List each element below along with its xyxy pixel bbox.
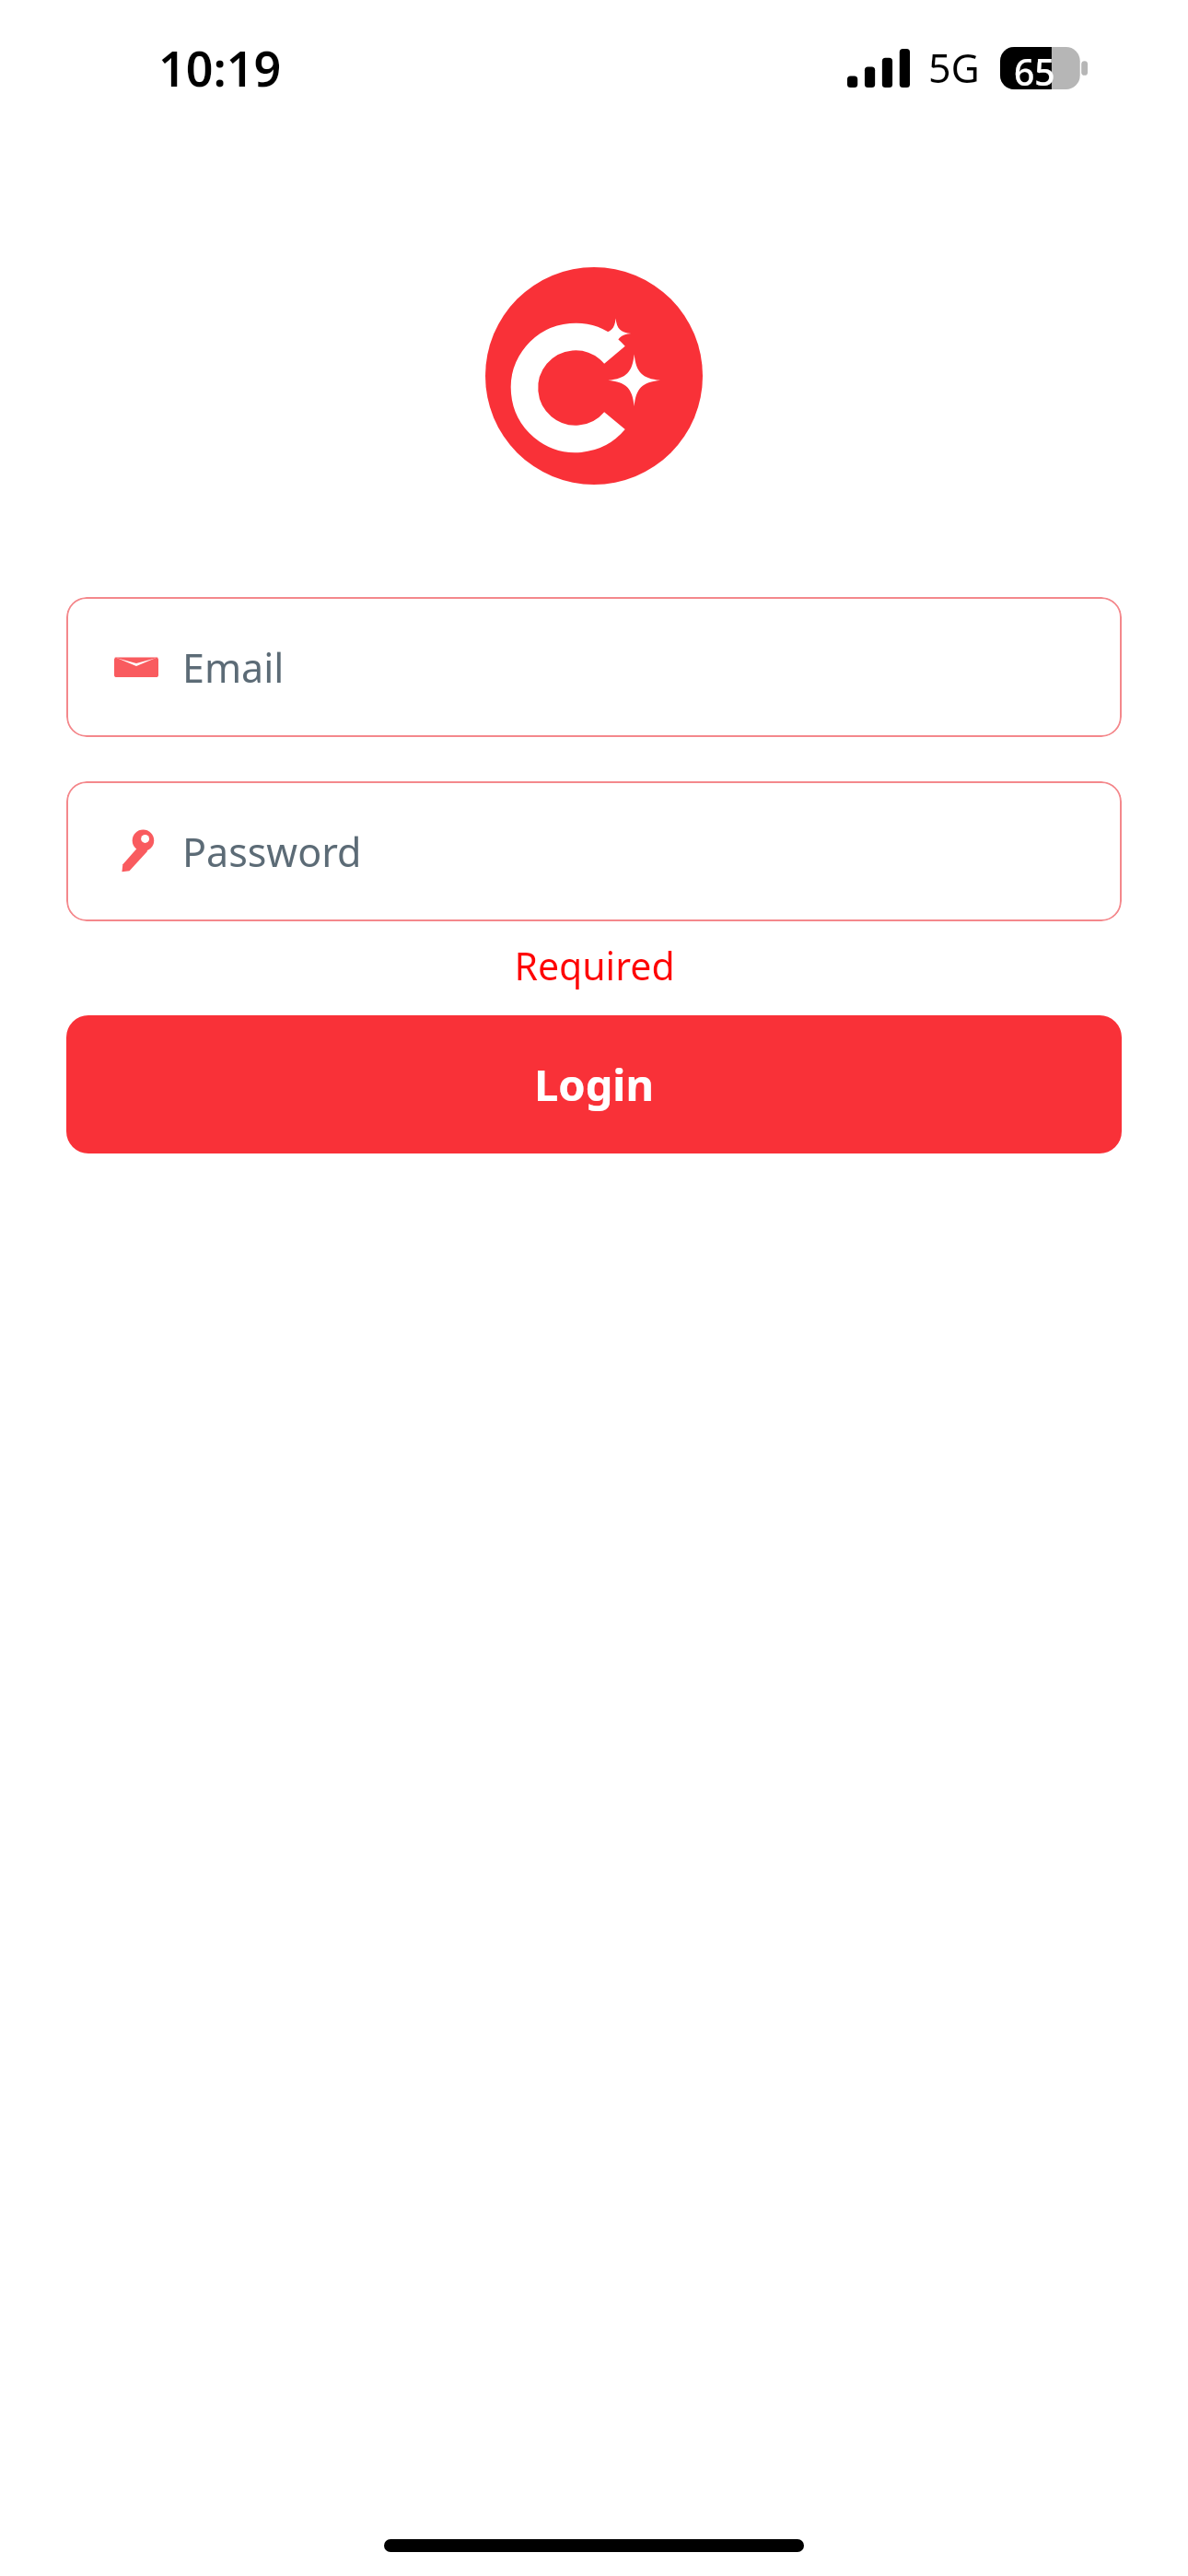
other: Email <box>114 645 158 689</box>
other: Password <box>114 829 158 873</box>
staticText: 10:19 <box>158 35 282 100</box>
staticText: Required <box>514 940 675 991</box>
button[interactable]: Login <box>66 1015 1122 1153</box>
staticText: Login <box>534 1055 654 1114</box>
button[interactable]: Email <box>66 597 1122 737</box>
button[interactable]: Password <box>66 781 1122 921</box>
staticText: Email <box>182 640 285 695</box>
staticText: 65 <box>1014 47 1055 89</box>
staticText: 5G <box>928 41 980 95</box>
staticText: Password <box>182 825 362 879</box>
